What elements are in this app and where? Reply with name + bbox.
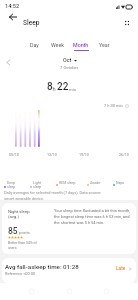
staticText: min xyxy=(69,87,77,92)
staticText: Avg fall-asleep time: 01:28 xyxy=(5,263,79,270)
staticText: REM sleep xyxy=(59,181,76,185)
staticText: Light sleep xyxy=(33,181,42,189)
staticText: Reference <00:00 xyxy=(5,271,36,276)
button[interactable]: Month xyxy=(69,40,93,53)
staticText: Week xyxy=(51,42,64,48)
staticText: 85 xyxy=(8,226,18,236)
button[interactable]: Oct xyxy=(63,57,77,63)
button[interactable]: Avg fall-asleep time: 01:28 xyxy=(2,258,136,283)
staticText: 22 xyxy=(57,81,69,93)
button[interactable]: Day xyxy=(23,40,46,53)
staticText: h xyxy=(53,87,56,92)
staticText: Daily averages for selected month (7 day… xyxy=(4,190,138,201)
staticText: Naps xyxy=(116,181,125,185)
staticText: 05/10 xyxy=(9,153,19,157)
staticText: Month xyxy=(73,42,89,48)
staticText: 7 October xyxy=(60,65,79,70)
button[interactable]: Week xyxy=(46,40,69,53)
staticText: Awake xyxy=(90,181,101,185)
staticText: 14:52 xyxy=(5,3,20,10)
staticText: Late xyxy=(116,266,126,272)
staticText: points xyxy=(19,230,30,235)
button[interactable]: Back xyxy=(7,11,19,23)
staticText: Night sleep xyxy=(8,209,30,214)
staticText: Day xyxy=(30,42,39,48)
staticText: Year xyxy=(99,42,110,48)
staticText: (avg.) xyxy=(8,214,19,219)
staticText: 19/10 xyxy=(79,153,89,157)
staticText: 7 h 30 min xyxy=(104,103,123,108)
staticText: 13/10 xyxy=(47,153,57,157)
button[interactable]: More options xyxy=(121,17,132,28)
staticText: Your sleep time fluctuated a bit this mo… xyxy=(54,208,132,225)
staticText: Better than 54% of users xyxy=(8,241,37,250)
button[interactable]: Previous month xyxy=(3,57,14,68)
button[interactable]: Night sleep xyxy=(2,203,136,254)
staticText: Deep sleep xyxy=(7,181,16,189)
staticText: 8 xyxy=(47,81,53,93)
staticText: Sleep xyxy=(23,19,40,27)
button[interactable]: Year xyxy=(93,40,116,53)
staticText: 26/10 xyxy=(119,153,129,157)
staticText: Oct xyxy=(63,57,72,63)
